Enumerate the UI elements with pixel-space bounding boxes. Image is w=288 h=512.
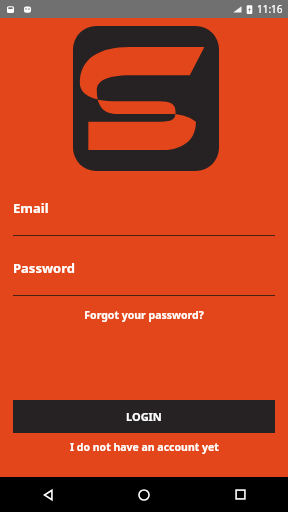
button[interactable]: Forgot your password? [0,302,288,328]
staticText: I do not have an account yet [70,440,219,454]
staticText: Forgot your password? [84,308,204,322]
button[interactable]: Email [0,199,288,235]
button[interactable]: Recent apps [192,477,288,512]
staticText: Password [13,259,75,277]
staticText: LOGIN [126,409,162,424]
staticText: Email [13,199,49,217]
button[interactable]: LOGIN [13,400,275,433]
button[interactable]: I do not have an account yet [0,433,288,461]
button[interactable]: Password [0,259,288,295]
button[interactable]: Back [0,477,96,512]
staticText: 11:16 [257,2,283,16]
button[interactable]: Home [96,477,192,512]
